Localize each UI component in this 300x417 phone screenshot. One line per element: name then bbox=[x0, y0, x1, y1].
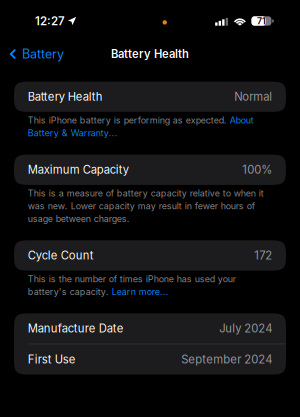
button[interactable]: Maximum Capacity bbox=[14, 155, 286, 185]
staticText: This iPhone battery is performing as exp… bbox=[28, 115, 254, 138]
button[interactable]: Battery bbox=[0, 41, 70, 67]
staticText: Cycle Count bbox=[28, 249, 94, 262]
button[interactable]: Battery Health bbox=[14, 82, 286, 112]
staticText: September 2024 bbox=[181, 353, 272, 366]
staticText: 172 bbox=[254, 249, 272, 262]
staticText: 71 bbox=[257, 16, 266, 26]
staticText: This is the number of times iPhone has u… bbox=[28, 274, 236, 297]
staticText: 12:27 bbox=[35, 14, 65, 28]
staticText: First Use bbox=[28, 353, 76, 366]
staticText: Normal bbox=[234, 90, 272, 103]
staticText: Battery Health bbox=[28, 90, 103, 103]
button[interactable]: Cycle Count bbox=[14, 240, 286, 271]
staticText: 100% bbox=[242, 163, 272, 177]
staticText: July 2024 bbox=[219, 322, 272, 335]
staticText: Battery bbox=[22, 46, 64, 62]
button[interactable]: First Use bbox=[14, 344, 286, 375]
staticText: Manufacture Date bbox=[28, 322, 124, 335]
staticText: Battery Health bbox=[111, 47, 189, 61]
staticText: This is a measure of battery capacity re… bbox=[28, 188, 264, 224]
button[interactable]: Manufacture Date bbox=[14, 313, 286, 344]
staticText: Maximum Capacity bbox=[28, 163, 129, 177]
